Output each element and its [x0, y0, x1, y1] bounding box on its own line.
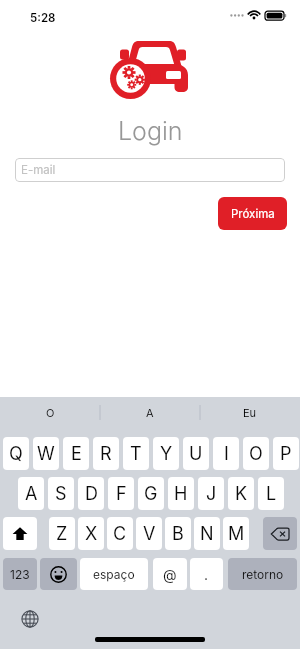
button[interactable]: O — [0, 397, 100, 428]
staticText: O — [249, 443, 263, 465]
staticText: Próxima — [231, 207, 275, 221]
staticText: B — [172, 523, 184, 545]
button[interactable]: X — [78, 517, 104, 550]
staticText: @ — [163, 566, 177, 583]
button[interactable]: O — [243, 437, 269, 470]
button[interactable]: J — [198, 477, 224, 510]
staticText: Z — [56, 523, 68, 545]
staticText: N — [200, 523, 214, 545]
button[interactable]: Z — [49, 517, 75, 550]
button[interactable]: E-mail — [15, 158, 285, 182]
staticText: A — [25, 483, 38, 505]
button[interactable]: F — [108, 477, 134, 510]
staticText: T — [130, 443, 142, 465]
button[interactable]: C — [107, 517, 133, 550]
staticText: L — [266, 483, 277, 505]
staticText: J — [206, 483, 217, 505]
staticText: Login — [118, 116, 183, 146]
staticText: Q — [9, 443, 23, 465]
staticText: O — [46, 406, 55, 419]
button[interactable]: L — [258, 477, 284, 510]
staticText: retorno — [242, 567, 284, 582]
button[interactable]: I — [213, 437, 239, 470]
button[interactable]: H — [168, 477, 194, 510]
staticText: E-mail — [21, 163, 56, 177]
staticText: A — [146, 406, 154, 419]
staticText: R — [100, 443, 112, 465]
staticText: 123 — [10, 567, 30, 582]
staticText: I — [224, 443, 229, 465]
button[interactable]: Próxima — [218, 197, 287, 230]
staticText: 5:28 — [30, 11, 56, 25]
button[interactable]: E — [63, 437, 89, 470]
staticText: Y — [160, 443, 173, 465]
staticText: D — [85, 483, 98, 505]
staticText: H — [174, 483, 188, 505]
staticText: X — [85, 523, 98, 545]
button[interactable]: W — [33, 437, 59, 470]
staticText: Eu — [243, 406, 257, 419]
button[interactable]: R — [93, 437, 119, 470]
button[interactable]: V — [136, 517, 162, 550]
button[interactable]: B — [165, 517, 191, 550]
staticText: U — [189, 443, 203, 465]
button[interactable]: Emoji — [40, 558, 77, 590]
button[interactable]: D — [78, 477, 104, 510]
button[interactable]: G — [138, 477, 164, 510]
button[interactable]: Shift — [3, 517, 37, 550]
staticText: K — [235, 483, 248, 505]
button[interactable]: retorno — [228, 558, 297, 590]
staticText: . — [204, 566, 209, 583]
staticText: S — [55, 483, 67, 505]
button[interactable]: . — [190, 558, 223, 590]
button[interactable]: K — [228, 477, 254, 510]
staticText: V — [143, 523, 156, 545]
staticText: E — [71, 443, 82, 465]
button[interactable]: A — [18, 477, 44, 510]
staticText: C — [113, 523, 127, 545]
staticText: P — [280, 443, 292, 465]
button[interactable]: T — [123, 437, 149, 470]
button[interactable]: Eu — [200, 397, 300, 428]
button[interactable]: M — [223, 517, 249, 550]
button[interactable]: U — [183, 437, 209, 470]
button[interactable]: P — [273, 437, 299, 470]
staticText: M — [228, 523, 245, 545]
button[interactable]: Change keyboard language — [21, 610, 39, 628]
staticText: W — [37, 443, 55, 465]
button[interactable]: Y — [153, 437, 179, 470]
button[interactable]: @ — [153, 558, 187, 590]
button[interactable]: Backspace — [263, 517, 297, 550]
button[interactable]: Q — [3, 437, 29, 470]
staticText: espaço — [93, 567, 135, 582]
staticText: G — [144, 483, 158, 505]
button[interactable]: espaço — [80, 558, 148, 590]
button[interactable]: N — [194, 517, 220, 550]
button[interactable]: A — [100, 397, 200, 428]
button[interactable]: 123 — [3, 558, 37, 590]
staticText: F — [116, 483, 127, 505]
button[interactable]: S — [48, 477, 74, 510]
other: App logo — [110, 40, 190, 100]
